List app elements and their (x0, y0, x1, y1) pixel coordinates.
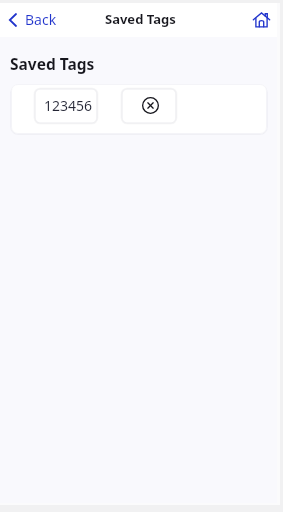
button[interactable]: Delete tag (121, 88, 177, 124)
staticText: Saved Tags (10, 53, 95, 74)
button[interactable]: Back (0, 4, 65, 35)
staticText: Saved Tags (105, 10, 176, 28)
staticText: 123456 (44, 96, 93, 115)
button[interactable]: Home (253, 11, 270, 28)
button[interactable]: 123456 (34, 88, 98, 124)
staticText: Back (25, 10, 57, 29)
